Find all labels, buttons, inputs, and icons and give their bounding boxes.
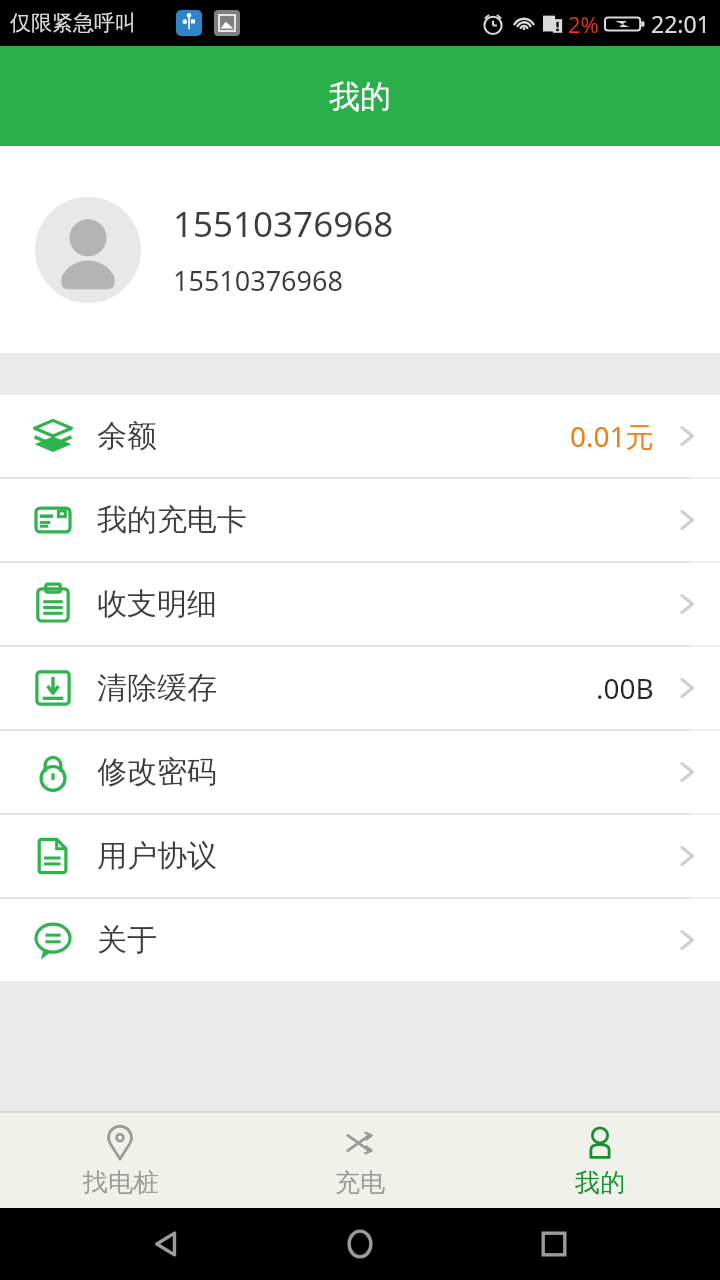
- button[interactable]: Charge: [240, 1113, 480, 1208]
- button[interactable]: 修改密码: [0, 731, 720, 813]
- staticText: 0.01元: [570, 417, 654, 455]
- staticText: 15510376968: [173, 262, 343, 299]
- staticText: 清除缓存: [97, 669, 217, 707]
- staticText: 余额: [97, 417, 157, 455]
- staticText: 我的: [575, 1167, 625, 1198]
- staticText: 找电桩: [83, 1167, 158, 1198]
- staticText: .00B: [596, 669, 654, 707]
- staticText: 我的充电卡: [97, 501, 247, 539]
- staticText: 22:01: [651, 8, 710, 39]
- button[interactable]: Find charging station: [0, 1113, 240, 1208]
- staticText: 修改密码: [97, 753, 217, 791]
- button[interactable]: Back: [140, 1217, 194, 1271]
- button[interactable]: 余额: [0, 395, 720, 477]
- staticText: 2%: [568, 9, 599, 39]
- button[interactable]: 用户协议: [0, 815, 720, 897]
- button[interactable]: 收支明细: [0, 563, 720, 645]
- staticText: 收支明细: [97, 585, 217, 623]
- staticText: 用户协议: [97, 837, 217, 875]
- staticText: 仅限紧急呼叫: [10, 10, 136, 36]
- staticText: 15510376968: [173, 200, 394, 248]
- staticText: 充电: [335, 1167, 385, 1198]
- staticText: 我的: [329, 77, 391, 116]
- button[interactable]: 我的充电卡: [0, 479, 720, 561]
- button[interactable]: 15510376968: [0, 146, 720, 353]
- button[interactable]: Recents: [527, 1217, 581, 1271]
- button[interactable]: 关于: [0, 899, 720, 981]
- button[interactable]: Profile: [480, 1113, 720, 1208]
- button[interactable]: Home: [333, 1217, 387, 1271]
- staticText: 关于: [97, 921, 157, 959]
- button[interactable]: 清除缓存: [0, 647, 720, 729]
